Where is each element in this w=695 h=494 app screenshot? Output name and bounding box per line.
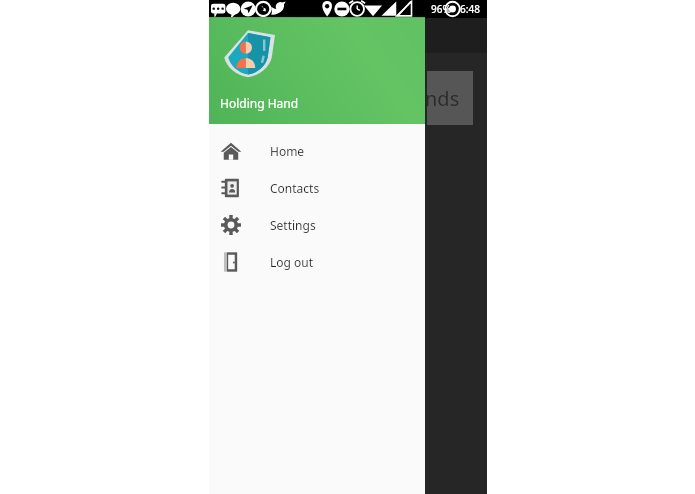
staticText: Contacts [270, 180, 320, 196]
staticText: Home [270, 143, 305, 159]
staticText: 96% [431, 2, 451, 16]
staticText: Settings [270, 217, 316, 233]
staticText: Holding Hand [220, 95, 299, 111]
button[interactable]: Contacts [209, 169, 425, 206]
staticText: Log out [270, 254, 314, 270]
button[interactable]: Home [209, 132, 425, 169]
staticText: 6:48 [460, 2, 480, 16]
button[interactable]: Log out [209, 243, 425, 280]
button[interactable]: Settings [209, 206, 425, 243]
staticText: nds [425, 85, 460, 112]
